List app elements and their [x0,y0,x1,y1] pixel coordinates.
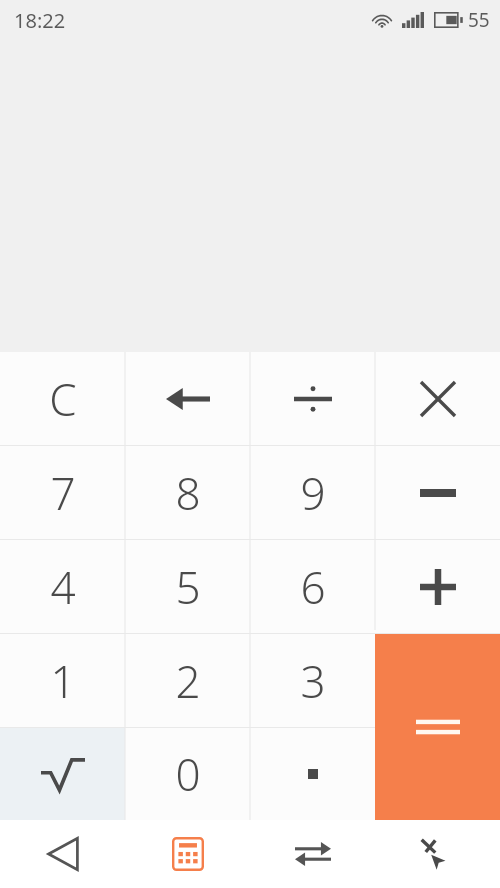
staticText: 9 [300,463,326,523]
button[interactable]: Multiply [375,352,500,445]
button[interactable]: 4 [0,540,125,633]
button[interactable]: Cursor [375,820,500,888]
button[interactable]: Minus [375,446,500,539]
staticText: 55 [468,7,490,33]
staticText: 2 [175,651,201,711]
button[interactable]: Clear [0,352,125,445]
button[interactable]: Calculator [125,820,250,888]
staticText: 7 [50,463,76,523]
button[interactable]: 6 [250,540,375,633]
staticText: 5 [175,557,201,617]
button[interactable]: Equals [375,634,500,820]
staticText: 8 [175,463,201,523]
button[interactable]: Convert [250,820,375,888]
staticText: C [49,369,77,429]
staticText: 18:22 [14,7,66,34]
button[interactable]: Square root [0,728,125,820]
staticText: 1 [50,651,76,711]
button[interactable]: 5 [125,540,250,633]
staticText: 6 [300,557,326,617]
button[interactable]: 3 [250,634,375,727]
button[interactable]: 0 [125,728,250,820]
button[interactable]: Decimal point [250,728,375,820]
button[interactable]: Backspace [125,352,250,445]
button[interactable]: 7 [0,446,125,539]
button[interactable]: Divide [250,352,375,445]
button[interactable]: 8 [125,446,250,539]
staticText: 0 [175,744,201,804]
button[interactable]: Back [0,820,125,888]
button[interactable]: 1 [0,634,125,727]
button[interactable]: 2 [125,634,250,727]
staticText: 4 [50,557,76,617]
button[interactable]: Plus [375,540,500,633]
staticText: 3 [300,651,326,711]
button[interactable]: 9 [250,446,375,539]
